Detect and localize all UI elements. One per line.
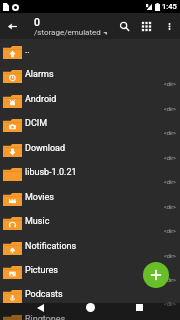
staticText: <dir> xyxy=(164,301,176,307)
staticText: Android xyxy=(25,94,57,105)
button[interactable]: Create new xyxy=(143,262,169,288)
staticText: 0 xyxy=(34,16,40,28)
button[interactable]: libusb-1.0.21 xyxy=(0,165,180,189)
button[interactable]: Pictures xyxy=(0,263,180,287)
button[interactable]: Recent apps xyxy=(133,301,146,314)
staticText: <dir> xyxy=(164,228,176,234)
staticText: <dir> xyxy=(164,179,176,185)
button[interactable]: DCIM xyxy=(0,116,180,140)
staticText: Podcasts xyxy=(25,289,63,300)
button[interactable]: Podcasts xyxy=(0,287,180,311)
staticText: Ringtones xyxy=(25,314,66,320)
staticText: <dir> xyxy=(164,253,176,259)
button[interactable]: Download xyxy=(0,141,180,165)
button[interactable]: Navigate up xyxy=(0,13,25,39)
staticText: Pictures xyxy=(25,265,58,276)
staticText: Alarms xyxy=(25,69,54,80)
button[interactable]: Movies xyxy=(0,190,180,214)
staticText: <dir> xyxy=(164,81,176,87)
button[interactable]: Grid view xyxy=(135,13,157,39)
staticText: <dir> xyxy=(164,204,176,210)
staticText: <dir> xyxy=(164,155,176,161)
staticText: libusb-1.0.21 xyxy=(25,167,77,178)
staticText: /storage/emulated xyxy=(34,28,101,37)
button[interactable]: Search xyxy=(113,13,135,39)
staticText: DCIM xyxy=(25,118,48,129)
staticText: <dir> xyxy=(164,106,176,112)
button[interactable]: Music xyxy=(0,214,180,238)
button[interactable]: Home xyxy=(84,301,97,314)
staticText: Notifications xyxy=(25,241,77,252)
button[interactable]: Notifications xyxy=(0,239,180,263)
staticText: Music xyxy=(25,216,50,227)
button[interactable]: .. xyxy=(0,43,180,67)
button[interactable]: Android xyxy=(0,92,180,116)
staticText: <dir> xyxy=(164,277,176,283)
button[interactable]: More options xyxy=(158,13,180,39)
staticText: 1:45 xyxy=(162,2,177,11)
button[interactable]: Ringtones xyxy=(0,312,180,320)
staticText: <dir> xyxy=(164,130,176,136)
staticText: Movies xyxy=(25,192,54,203)
staticText: .. xyxy=(25,45,30,56)
button[interactable]: Alarms xyxy=(0,67,180,91)
button[interactable]: Back xyxy=(34,301,47,314)
staticText: Download xyxy=(25,143,66,154)
